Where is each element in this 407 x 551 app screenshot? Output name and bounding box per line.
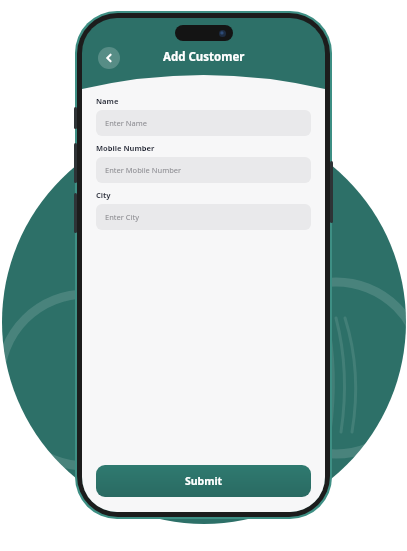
button[interactable]: Submit bbox=[96, 465, 311, 497]
staticText: Name bbox=[96, 96, 119, 106]
staticText: Mobile Number bbox=[96, 143, 155, 153]
staticText: Enter City bbox=[105, 212, 139, 222]
staticText: Enter Name bbox=[105, 118, 147, 128]
button[interactable]: Back bbox=[98, 47, 120, 69]
staticText: Enter Mobile Number bbox=[105, 165, 182, 175]
staticText: City bbox=[96, 190, 111, 200]
staticText: Add Customer bbox=[163, 49, 245, 65]
button[interactable]: Enter Mobile Number bbox=[96, 157, 311, 183]
button[interactable]: Enter City bbox=[96, 204, 311, 230]
staticText: Submit bbox=[185, 474, 223, 488]
button[interactable]: Enter Name bbox=[96, 110, 311, 136]
